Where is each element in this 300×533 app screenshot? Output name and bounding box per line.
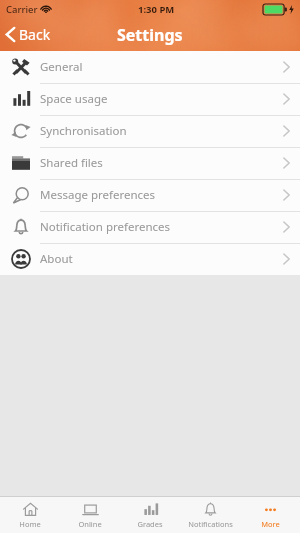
button[interactable]: Home bbox=[0, 497, 60, 533]
button[interactable]: Synchronisation bbox=[0, 115, 300, 147]
staticText: Synchronisation bbox=[40, 123, 127, 139]
staticText: Notifications bbox=[188, 519, 233, 529]
button[interactable]: Notification preferences bbox=[0, 211, 300, 243]
staticText: Carrier bbox=[6, 3, 38, 16]
staticText: More bbox=[261, 519, 280, 529]
button[interactable]: About bbox=[0, 243, 300, 275]
button[interactable]: Online bbox=[60, 497, 120, 533]
button[interactable]: Shared files bbox=[0, 147, 300, 179]
staticText: Space usage bbox=[40, 91, 108, 107]
other: Online bbox=[82, 501, 99, 518]
staticText: About bbox=[40, 251, 73, 267]
other: More bbox=[262, 501, 279, 518]
other: Notifications bbox=[202, 501, 219, 518]
staticText: Message preferences bbox=[40, 187, 156, 203]
button[interactable]: Notifications bbox=[180, 497, 240, 533]
staticText: Back bbox=[19, 25, 51, 44]
staticText: Settings bbox=[117, 24, 183, 46]
button[interactable]: General bbox=[0, 51, 300, 83]
button[interactable]: Grades bbox=[120, 497, 180, 533]
other: Grades bbox=[142, 501, 159, 518]
button[interactable]: Back bbox=[0, 18, 59, 51]
button[interactable]: More bbox=[240, 497, 300, 533]
staticText: Notification preferences bbox=[40, 219, 171, 235]
button[interactable]: Space usage bbox=[0, 83, 300, 115]
staticText: 1:30 PM bbox=[138, 3, 175, 16]
staticText: Shared files bbox=[40, 155, 103, 171]
other: Home bbox=[22, 501, 39, 518]
staticText: Online bbox=[78, 519, 102, 529]
staticText: Grades bbox=[137, 519, 163, 529]
button[interactable]: Message preferences bbox=[0, 179, 300, 211]
staticText: Home bbox=[19, 519, 41, 529]
staticText: General bbox=[40, 59, 83, 75]
